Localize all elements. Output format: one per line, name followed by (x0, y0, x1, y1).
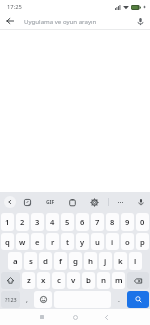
staticText: v (71, 275, 76, 286)
button[interactable]: y (76, 233, 89, 250)
button[interactable]: More options (110, 192, 130, 212)
staticText: 0 (140, 217, 145, 227)
staticText: g (73, 256, 78, 267)
button[interactable]: GIF (40, 192, 61, 212)
staticText: r (51, 237, 55, 247)
staticText: 1 (5, 217, 10, 227)
button[interactable]: a (8, 252, 22, 270)
staticText: y (80, 237, 85, 247)
staticText: q (5, 237, 10, 247)
staticText: . (118, 295, 120, 305)
button[interactable]: h (84, 252, 97, 270)
staticText: m (115, 275, 123, 286)
button[interactable]: f (54, 252, 67, 270)
staticText: e (35, 237, 40, 247)
staticText: z (27, 275, 31, 286)
button[interactable]: Navigation (65, 309, 85, 325)
button[interactable]: Comma (22, 291, 32, 308)
button[interactable]: 3 (31, 213, 44, 231)
staticText: t (66, 237, 70, 247)
button[interactable]: Back (0, 13, 20, 29)
button[interactable]: p (136, 233, 149, 250)
button[interactable]: Period (113, 291, 125, 308)
staticText: n (101, 275, 107, 286)
button[interactable]: g (69, 252, 82, 270)
button[interactable]: n (97, 272, 110, 289)
staticText: 17:25 (7, 3, 22, 11)
button[interactable]: x (37, 272, 50, 289)
button[interactable]: s (24, 252, 37, 270)
button[interactable]: i (106, 233, 119, 250)
staticText: b (86, 275, 91, 286)
button[interactable]: Voice search (130, 13, 150, 29)
button[interactable]: j (99, 252, 112, 270)
staticText: j (104, 256, 107, 267)
button[interactable]: Symbols (1, 291, 20, 308)
button[interactable]: Close toolbar (2, 192, 18, 212)
staticText: d (43, 256, 48, 267)
staticText: f (59, 256, 62, 267)
staticText: a (13, 256, 18, 267)
button[interactable]: 5 (61, 213, 74, 231)
button[interactable]: d (39, 252, 52, 270)
staticText: l (134, 256, 137, 267)
staticText: s (29, 256, 33, 267)
staticText: x (41, 275, 46, 286)
staticText: Uygulama ve oyun arayın (24, 17, 130, 25)
button[interactable]: Shift (1, 272, 20, 289)
button[interactable]: w (16, 233, 29, 250)
button[interactable]: Emoji (34, 291, 52, 308)
staticText: 7 (95, 217, 100, 227)
button[interactable]: o (121, 233, 134, 250)
staticText: 8 (110, 217, 115, 227)
button[interactable]: e (31, 233, 44, 250)
button[interactable]: t (61, 233, 74, 250)
button[interactable]: c (52, 272, 65, 289)
button[interactable]: k (114, 252, 127, 270)
button[interactable]: Settings (84, 192, 104, 212)
staticText: 4 (50, 217, 55, 227)
button[interactable]: Navigation (96, 309, 116, 325)
staticText: w (19, 237, 26, 247)
button[interactable]: v (67, 272, 80, 289)
button[interactable]: r (46, 233, 59, 250)
button[interactable]: m (112, 272, 125, 289)
button[interactable]: 7 (91, 213, 104, 231)
button[interactable]: 0 (136, 213, 149, 231)
button[interactable]: 2 (16, 213, 29, 231)
button[interactable]: Voice input (131, 192, 150, 212)
staticText: h (88, 256, 94, 267)
staticText: 9 (125, 217, 130, 227)
button[interactable]: Backspace (127, 272, 149, 289)
staticText: u (95, 237, 100, 247)
staticText: , (26, 295, 28, 305)
button[interactable]: Navigation (32, 309, 52, 325)
button[interactable]: 1 (1, 213, 14, 231)
button[interactable]: Stickers (17, 192, 37, 212)
button[interactable]: 9 (121, 213, 134, 231)
button[interactable]: 8 (106, 213, 119, 231)
staticText: 5 (65, 217, 70, 227)
button[interactable]: u (91, 233, 104, 250)
button[interactable]: Search (127, 291, 149, 308)
staticText: k (118, 256, 123, 267)
button[interactable]: 4 (46, 213, 59, 231)
button[interactable]: b (82, 272, 95, 289)
button[interactable]: 6 (76, 213, 89, 231)
staticText: 6 (80, 217, 85, 227)
button[interactable]: q (1, 233, 14, 250)
staticText: 2 (20, 217, 25, 227)
staticText: o (125, 237, 130, 247)
button[interactable]: l (129, 252, 142, 270)
staticText: 3 (35, 217, 40, 227)
staticText: GIF (46, 199, 55, 206)
button[interactable]: Clipboard (62, 192, 82, 212)
staticText: c (57, 275, 61, 286)
staticText: i (111, 237, 114, 247)
button[interactable]: z (22, 272, 35, 289)
staticText: p (140, 237, 145, 247)
staticText: ?123 (5, 296, 17, 303)
